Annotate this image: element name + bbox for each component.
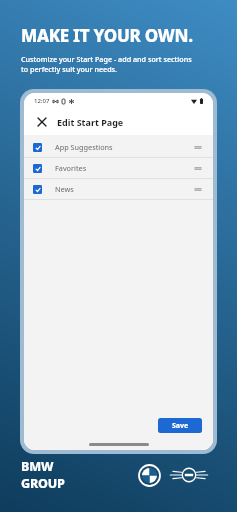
- staticText: Edit Start Page: [57, 116, 124, 128]
- button[interactable]: App Suggestions: [24, 137, 213, 157]
- button[interactable]: Favorites: [24, 158, 213, 178]
- staticText: 12:07: [34, 97, 50, 105]
- button[interactable]: Close: [33, 113, 51, 131]
- staticText: Favorites: [55, 163, 87, 173]
- staticText: App Suggestions: [55, 142, 113, 152]
- button[interactable]: Reorder Favorites: [192, 162, 204, 174]
- staticText: Customize your Start Page - add and sort…: [21, 54, 199, 74]
- button[interactable]: Save: [158, 418, 202, 433]
- staticText: BMW: [21, 458, 54, 475]
- button[interactable]: Reorder App Suggestions: [192, 141, 204, 153]
- staticText: GROUP: [21, 475, 65, 492]
- staticText: Save: [172, 421, 189, 431]
- staticText: MAKE IT YOUR OWN.: [21, 24, 193, 47]
- button[interactable]: Reorder News: [192, 183, 204, 195]
- staticText: News: [55, 184, 74, 194]
- button[interactable]: News: [24, 179, 213, 199]
